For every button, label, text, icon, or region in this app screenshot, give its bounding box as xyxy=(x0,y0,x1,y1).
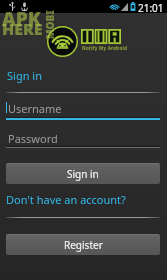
staticText: Password xyxy=(8,131,58,146)
staticText: 21:01 xyxy=(138,1,164,14)
staticText: Notify My Android xyxy=(82,45,128,51)
staticText: .MOBI xyxy=(43,10,57,42)
staticText: APK xyxy=(2,6,41,32)
button[interactable]: Sign in xyxy=(6,163,160,184)
staticText: Register xyxy=(64,238,103,252)
staticText: Sign in xyxy=(67,167,99,181)
staticText: Username xyxy=(8,101,62,116)
button[interactable]: Register xyxy=(6,234,160,255)
button[interactable]: Don't have an account? xyxy=(2,188,130,211)
staticText: Don't have an account? xyxy=(6,192,126,207)
staticText: HERE xyxy=(2,18,43,40)
staticText: Sign in xyxy=(7,68,42,83)
